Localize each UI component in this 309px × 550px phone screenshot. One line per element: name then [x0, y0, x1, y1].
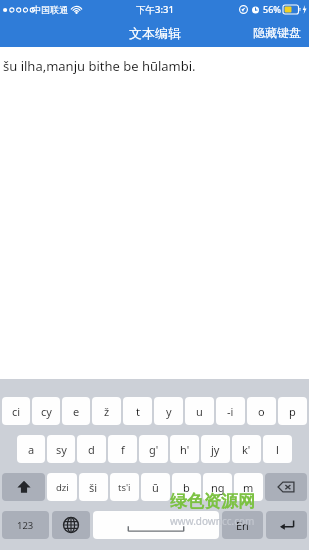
button[interactable]: g' [139, 435, 168, 463]
staticText: jy [211, 442, 220, 457]
staticText: 56% [263, 3, 281, 15]
button[interactable]: y [154, 397, 183, 425]
staticText: En [236, 518, 249, 533]
staticText: -i [227, 404, 234, 419]
button[interactable]: f [108, 435, 137, 463]
staticText: p [289, 404, 296, 419]
staticText: sy [56, 442, 67, 457]
staticText: www.downcc.com [170, 514, 255, 528]
staticText: 绿色资源网 [170, 491, 255, 512]
button[interactable]: En [222, 511, 263, 539]
button[interactable]: ž [92, 397, 121, 425]
staticText: ci [12, 404, 21, 419]
staticText: l [276, 442, 279, 457]
button[interactable]: ts'i [110, 473, 139, 501]
button[interactable]: 123 [2, 511, 49, 539]
staticText: g' [149, 442, 159, 457]
button[interactable]: sy [47, 435, 75, 463]
staticText: e [73, 404, 80, 419]
staticText: h' [180, 442, 190, 457]
button[interactable]: k' [232, 435, 261, 463]
button[interactable]: t [123, 397, 152, 425]
button[interactable]: ng [203, 473, 232, 501]
staticText: ts'i [118, 481, 131, 494]
button[interactable]: u [185, 397, 214, 425]
staticText: 文本编辑 [129, 25, 181, 41]
staticText: f [121, 442, 125, 457]
button[interactable]: dzi [47, 473, 77, 501]
button[interactable]: Backspace [265, 473, 307, 501]
staticText: m [243, 480, 254, 495]
staticText: ž [104, 404, 110, 419]
button[interactable]: Return [266, 511, 307, 539]
button[interactable]: šu ilha,manju bithe be hūlambi. [0, 47, 309, 379]
staticText: dzi [56, 481, 69, 494]
button[interactable]: ci [2, 397, 30, 425]
button[interactable]: l [263, 435, 292, 463]
button[interactable]: e [62, 397, 90, 425]
button[interactable]: ši [79, 473, 108, 501]
staticText: t [136, 404, 140, 419]
staticText: a [28, 442, 35, 457]
staticText: ng [211, 480, 225, 495]
button[interactable]: ū [141, 473, 170, 501]
button[interactable]: Shift [2, 473, 45, 501]
button[interactable] [93, 511, 219, 539]
button[interactable]: m [234, 473, 263, 501]
staticText: 123 [17, 519, 34, 532]
button[interactable]: d [77, 435, 106, 463]
button[interactable]: cy [32, 397, 60, 425]
button[interactable]: p [278, 397, 307, 425]
button[interactable]: jy [201, 435, 230, 463]
staticText: 中国联通 [32, 4, 68, 15]
staticText: 隐藏键盘 [253, 25, 301, 40]
button[interactable]: 文本编辑 [125, 21, 185, 45]
button[interactable]: b [172, 473, 201, 501]
button[interactable]: o [247, 397, 276, 425]
button[interactable]: 隐藏键盘 [245, 21, 309, 44]
staticText: o [258, 404, 265, 419]
staticText: k' [242, 442, 251, 457]
button[interactable]: a [17, 435, 45, 463]
staticText: šu ilha,manju bithe be hūlambi. [3, 57, 196, 75]
staticText: d [88, 442, 95, 457]
staticText: ši [89, 480, 98, 495]
staticText: cy [41, 404, 52, 419]
staticText: 下午3:31 [136, 3, 174, 16]
button[interactable]: -i [216, 397, 245, 425]
button[interactable]: h' [170, 435, 199, 463]
staticText: u [196, 404, 203, 419]
staticText: y [166, 404, 172, 419]
button[interactable]: Switch keyboard [52, 511, 90, 539]
staticText: b [183, 480, 190, 495]
staticText: ū [152, 480, 159, 495]
